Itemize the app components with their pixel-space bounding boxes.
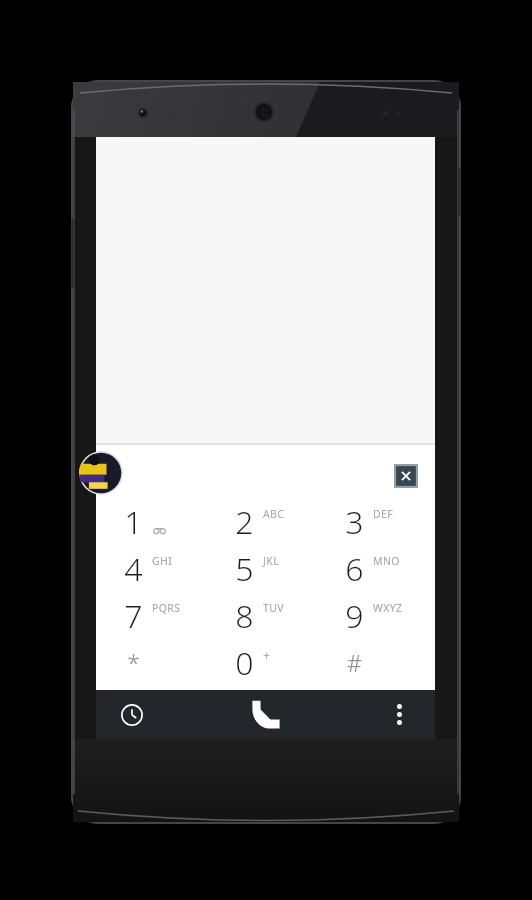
button[interactable] xyxy=(214,592,326,639)
staticText: DEF xyxy=(373,507,394,521)
staticText: 9 xyxy=(345,594,364,638)
button[interactable] xyxy=(324,592,436,639)
staticText: 6 xyxy=(345,547,364,591)
staticText: 4 xyxy=(124,547,143,591)
staticText: 5 xyxy=(235,547,254,591)
staticText: # xyxy=(347,647,362,678)
button[interactable] xyxy=(324,639,436,686)
button[interactable]: Contact photo xyxy=(79,451,123,495)
staticText: TUV xyxy=(263,601,285,615)
button[interactable] xyxy=(103,545,215,592)
staticText: PQRS xyxy=(152,601,181,615)
button[interactable]: Call history xyxy=(96,690,168,739)
button[interactable] xyxy=(214,498,326,545)
staticText: 2 xyxy=(235,500,254,544)
button[interactable] xyxy=(103,498,215,545)
staticText: 0 xyxy=(235,641,254,685)
staticText: MNO xyxy=(373,554,400,568)
staticText: 3 xyxy=(345,500,364,544)
button[interactable]: Delete xyxy=(394,464,418,488)
button[interactable] xyxy=(103,639,215,686)
staticText: 8 xyxy=(235,594,254,638)
button[interactable] xyxy=(214,639,326,686)
staticText: JKL xyxy=(263,554,280,568)
button[interactable] xyxy=(324,545,436,592)
button[interactable]: More options xyxy=(363,690,435,739)
staticText: 1 xyxy=(124,500,143,544)
button[interactable] xyxy=(103,592,215,639)
staticText: ABC xyxy=(263,507,285,521)
button[interactable] xyxy=(214,545,326,592)
staticText: * xyxy=(127,647,140,678)
staticText: WXYZ xyxy=(373,601,403,615)
button[interactable]: Dial pad xyxy=(168,690,363,739)
staticText: + xyxy=(263,647,271,662)
staticText: GHI xyxy=(152,554,173,568)
button[interactable] xyxy=(324,498,436,545)
staticText: 7 xyxy=(124,594,143,638)
